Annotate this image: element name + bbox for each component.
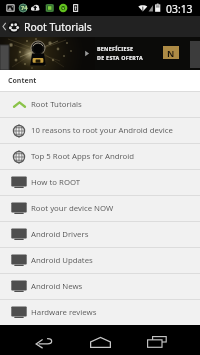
button[interactable]: Root Tutorials	[0, 92, 200, 117]
staticText: 74	[21, 4, 28, 11]
staticText: Android Updates	[31, 255, 93, 266]
staticText: Root your device NOW	[31, 203, 114, 214]
button[interactable]: BENEFÍCIESE	[0, 37, 200, 70]
staticText: Top 5 Root Apps for Android	[31, 151, 135, 162]
button[interactable]: Hardware reviews	[0, 300, 200, 325]
button[interactable]: Root your device NOW	[0, 196, 200, 221]
button[interactable]: 10 reasons to root your Android device	[0, 118, 200, 143]
staticText: N	[167, 47, 175, 59]
button[interactable]: Top 5 Root Apps for Android	[0, 144, 200, 169]
staticText: Root Tutorials	[31, 99, 82, 110]
button[interactable]: Root Tutorials	[0, 16, 200, 37]
button[interactable]: Android Updates	[0, 248, 200, 273]
button[interactable]: How to ROOT	[0, 170, 200, 195]
button[interactable]: Recent apps	[137, 327, 177, 355]
staticText: BENEFÍCIESE	[97, 45, 134, 52]
staticText: Android Drivers	[31, 229, 89, 240]
button[interactable]: Android News	[0, 274, 200, 299]
staticText: 10 reasons to root your Android device	[31, 125, 173, 136]
staticText: How to ROOT	[31, 177, 81, 188]
staticText: Content	[8, 76, 37, 86]
staticText: Root Tutorials	[24, 20, 92, 34]
staticText: Hardware reviews	[31, 307, 97, 318]
staticText: DE ESTA OFERTA	[97, 54, 143, 61]
button[interactable]: Home	[80, 327, 120, 355]
button[interactable]: Back	[24, 326, 64, 355]
staticText: 03:13	[166, 2, 193, 16]
staticText: Android News	[31, 281, 83, 292]
button[interactable]: Android Drivers	[0, 222, 200, 247]
